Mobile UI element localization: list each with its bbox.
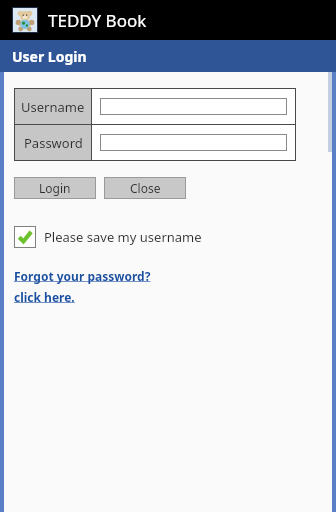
button[interactable]: Forgot your password? bbox=[14, 268, 151, 305]
staticText: User Login bbox=[12, 47, 87, 66]
staticText: Login bbox=[39, 180, 71, 196]
staticText: TEDDY Book bbox=[48, 9, 147, 32]
staticText: Please save my username bbox=[44, 228, 202, 246]
button[interactable]: Login bbox=[15, 178, 95, 198]
staticText: Username bbox=[21, 98, 85, 116]
button[interactable]: Close bbox=[105, 178, 185, 198]
staticText: Forgot your password? bbox=[14, 268, 151, 284]
button[interactable]: Please save my username bbox=[14, 226, 202, 248]
staticText: Close bbox=[130, 180, 161, 196]
staticText: Password bbox=[24, 134, 83, 152]
staticText: click here. bbox=[14, 289, 75, 305]
